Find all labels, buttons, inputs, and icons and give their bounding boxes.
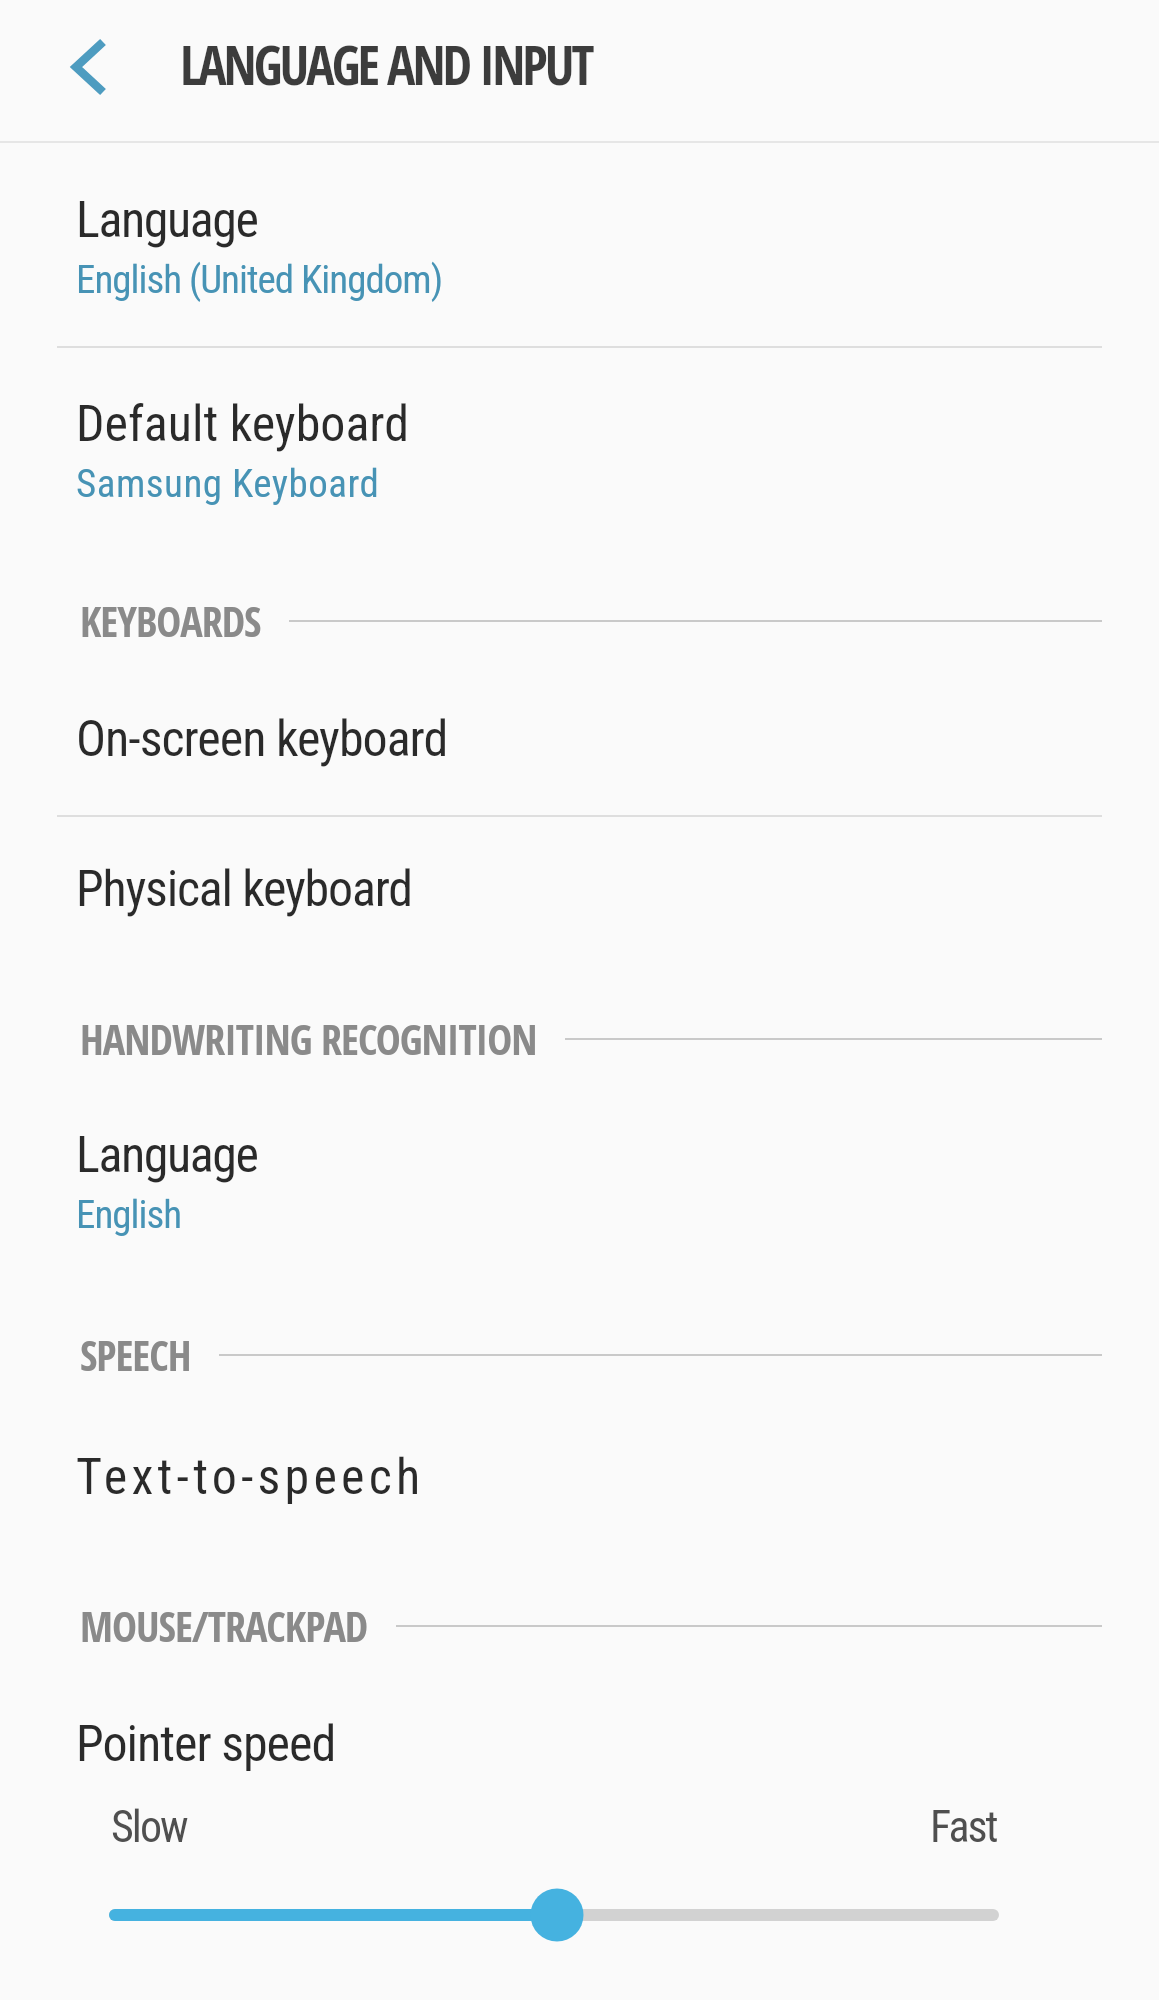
staticText: Language [76, 1126, 258, 1185]
button[interactable]: Default keyboard [57, 377, 1102, 525]
staticText: Slow [111, 1801, 187, 1853]
staticText: KEYBOARDS [80, 592, 261, 649]
button[interactable]: On-screen keyboard [57, 692, 1102, 787]
staticText: Default keyboard [76, 395, 409, 454]
button[interactable] [39, 17, 139, 117]
button[interactable]: Language [57, 1108, 1102, 1256]
staticText: Text-to-speech [76, 1448, 425, 1507]
staticText: SPEECH [80, 1326, 191, 1383]
staticText: English [76, 1192, 182, 1238]
button[interactable] [0, 1880, 1159, 1950]
staticText: Fast [930, 1801, 997, 1853]
staticText: English (United Kingdom) [76, 257, 443, 303]
staticText: LANGUAGE AND INPUT [180, 28, 592, 100]
button[interactable]: Language [57, 173, 1102, 321]
staticText: On-screen keyboard [76, 710, 448, 769]
staticText: MOUSE/TRACKPAD [80, 1597, 368, 1654]
staticText: Samsung Keyboard [76, 461, 380, 507]
button[interactable]: Physical keyboard [57, 842, 1102, 937]
staticText: Pointer speed [76, 1715, 336, 1774]
staticText: HANDWRITING RECOGNITION [80, 1010, 537, 1067]
button[interactable]: Text-to-speech [57, 1430, 1102, 1525]
button[interactable]: Pointer speed [57, 1697, 1102, 1792]
staticText: Language [76, 191, 258, 250]
staticText: Physical keyboard [76, 860, 412, 919]
